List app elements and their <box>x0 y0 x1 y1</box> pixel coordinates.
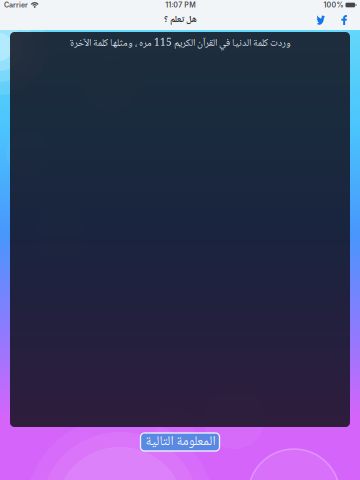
staticText: Carrier <box>4 1 28 9</box>
button[interactable]: المعلومة التالية <box>140 433 219 451</box>
staticText: 11:07 PM <box>165 1 196 9</box>
staticText: وردت كلمة الدنيا في القرآن الكريم 115 مر… <box>69 35 290 52</box>
staticText: المعلومة التالية <box>145 431 215 453</box>
button[interactable]: Share on Facebook <box>333 10 355 30</box>
staticText: هل تعلم ؟ <box>163 12 196 28</box>
staticText: 100% <box>323 1 343 9</box>
button[interactable]: Share on Twitter <box>309 10 333 30</box>
